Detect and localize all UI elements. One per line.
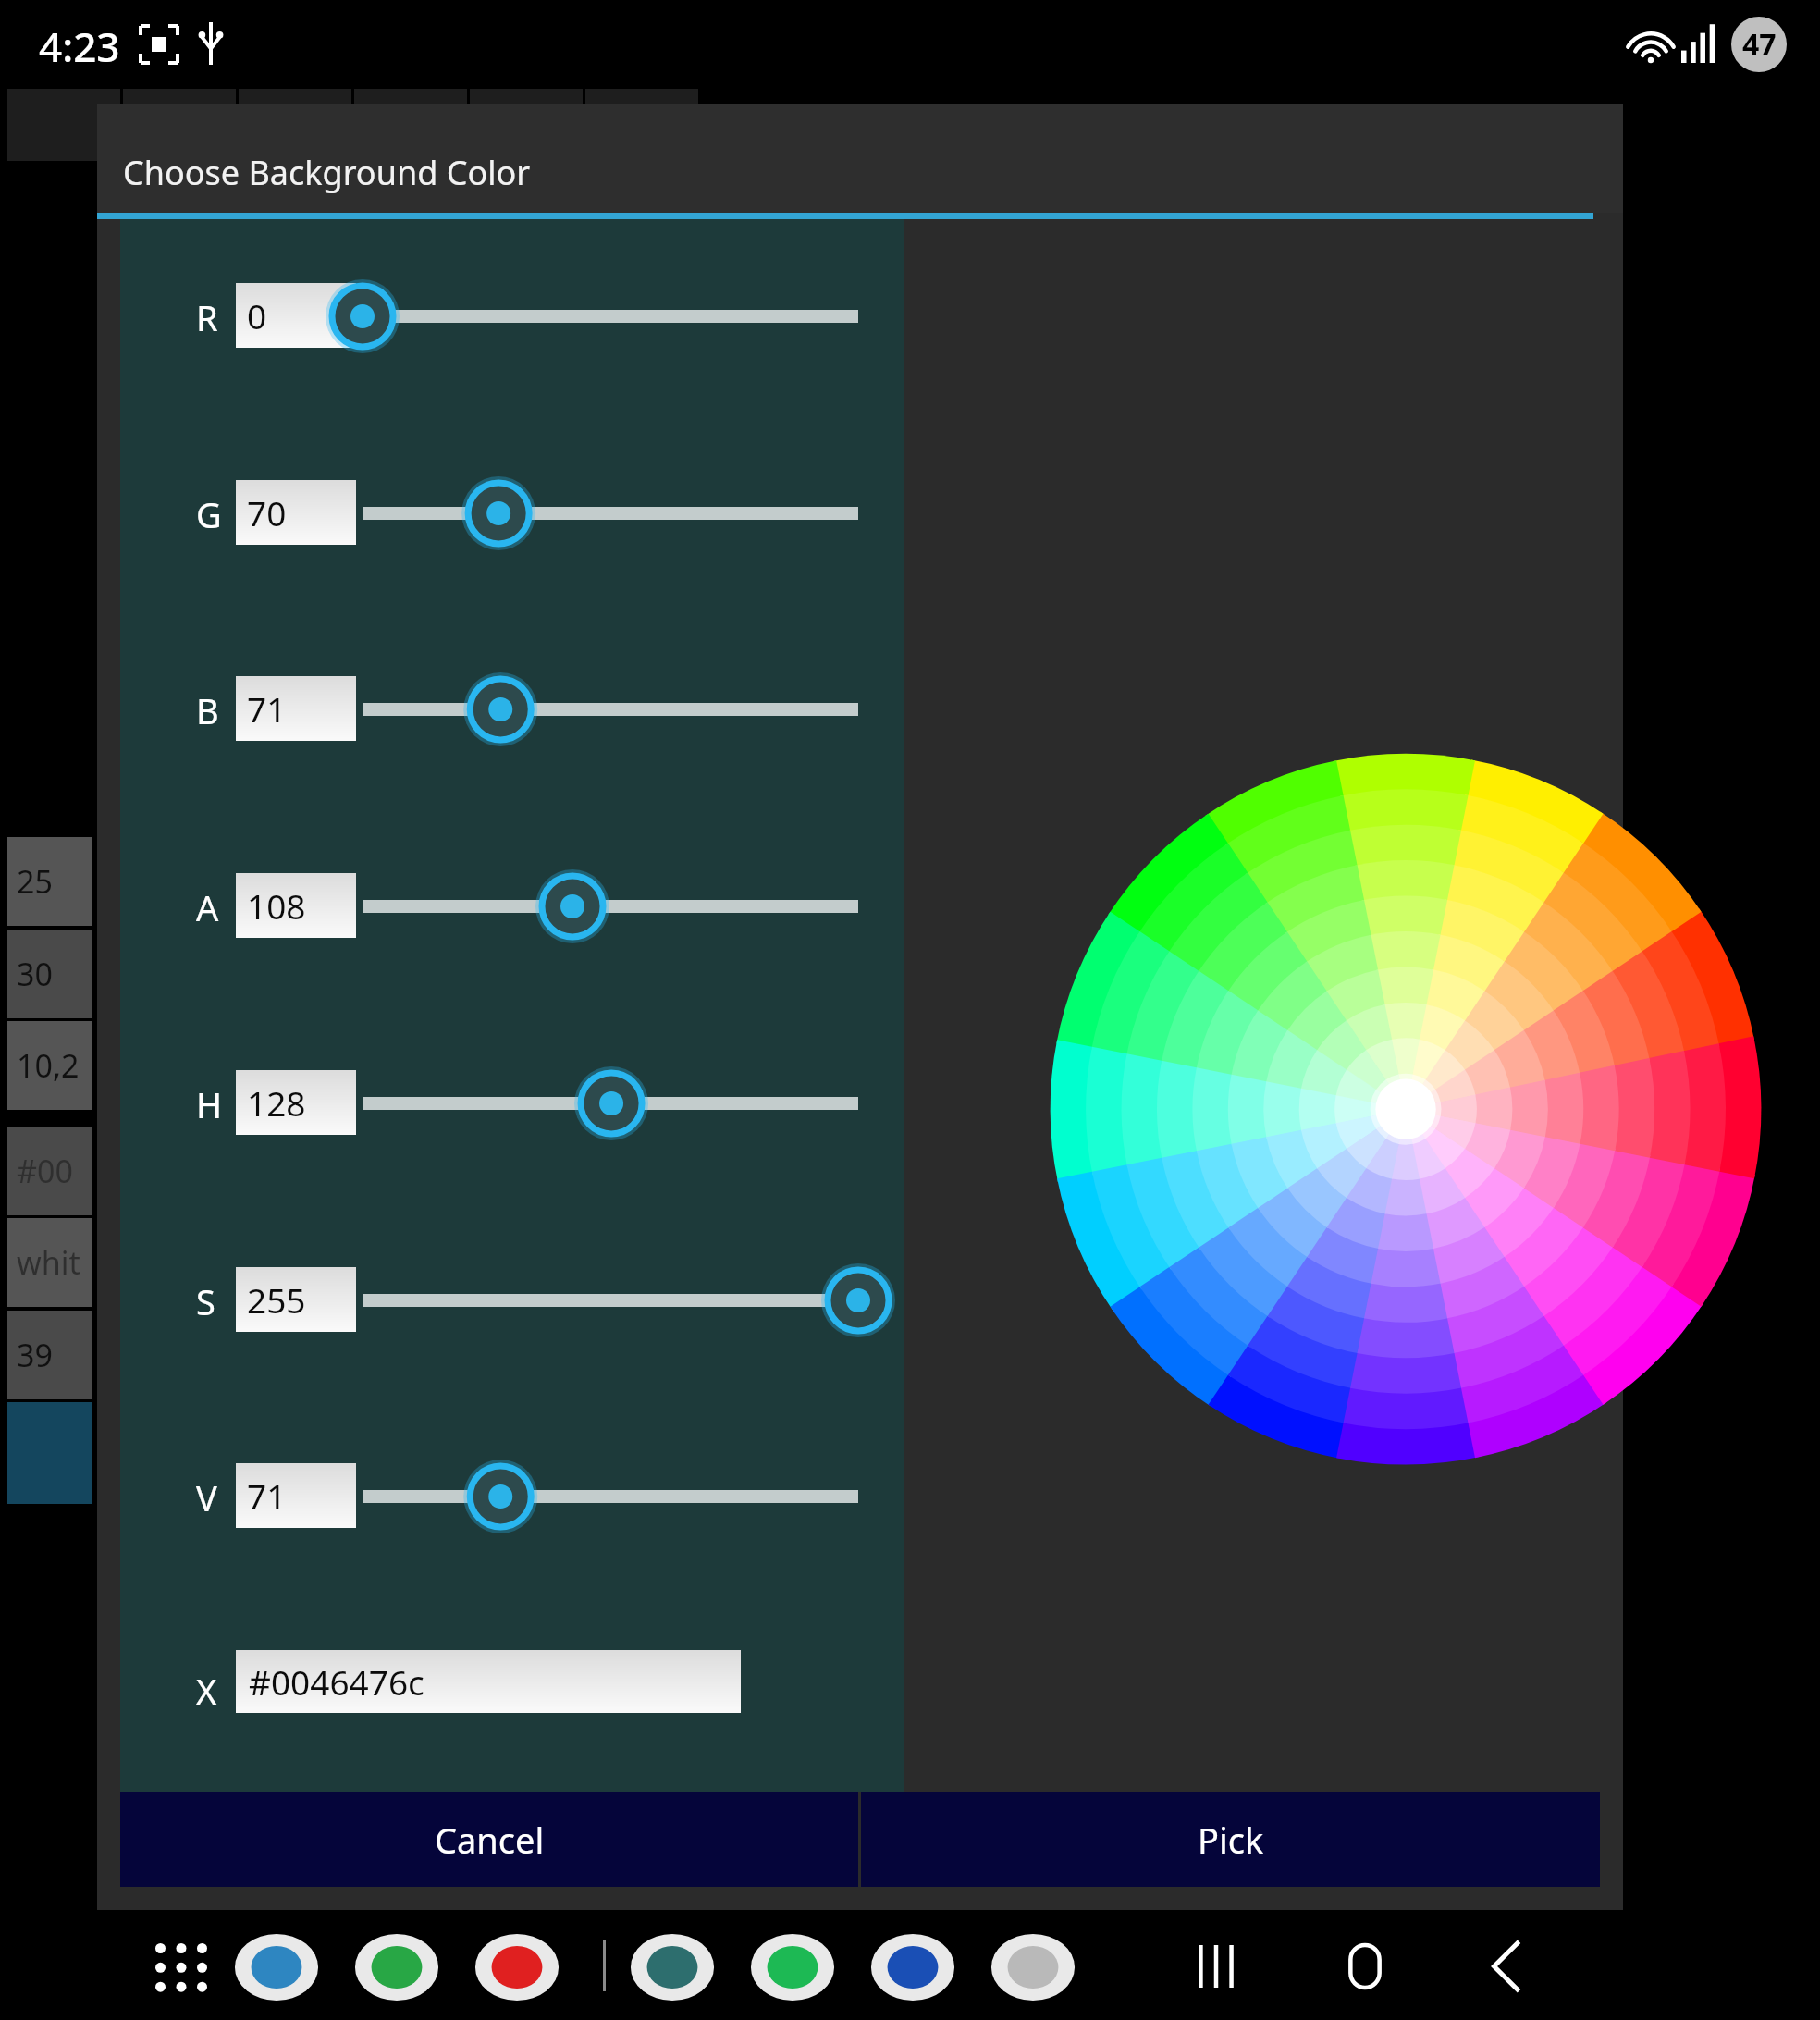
button[interactable]: Pick xyxy=(861,1792,1600,1887)
staticText: Cancel xyxy=(435,1816,545,1864)
button[interactable]: 0 xyxy=(236,283,356,348)
button[interactable]: 108 xyxy=(236,873,356,938)
staticText: 4:23 xyxy=(39,18,120,74)
button[interactable] xyxy=(7,1402,92,1504)
button[interactable]: V slider xyxy=(333,1455,888,1538)
staticText: S xyxy=(196,1277,215,1325)
button[interactable]: All apps xyxy=(155,1943,205,1989)
staticText: Choose Background Color xyxy=(123,150,531,195)
staticText: 108 xyxy=(247,882,306,929)
button[interactable]: Music folder xyxy=(988,1934,1078,2001)
button[interactable]: R slider xyxy=(333,275,888,358)
button[interactable]: S slider xyxy=(333,1259,888,1342)
button[interactable]: #0046476c xyxy=(236,1650,741,1713)
button[interactable] xyxy=(354,89,467,161)
staticText: 47 xyxy=(1742,24,1777,65)
staticText: 10,2 xyxy=(17,1044,80,1087)
button[interactable]: Email xyxy=(867,1934,958,2001)
staticText: 128 xyxy=(247,1079,306,1126)
button[interactable] xyxy=(7,89,120,161)
button[interactable]: Calculator xyxy=(351,1934,442,2001)
button[interactable]: A slider xyxy=(333,865,888,948)
button[interactable]: Back xyxy=(1487,1943,1526,1989)
button[interactable]: 71 xyxy=(236,1463,356,1528)
button[interactable] xyxy=(470,89,583,161)
staticText: whit xyxy=(17,1241,80,1284)
staticText: 39 xyxy=(17,1334,53,1376)
button[interactable]: 30 xyxy=(7,930,92,1018)
button[interactable]: Recents xyxy=(1195,1945,1237,1988)
staticText: R xyxy=(196,293,218,341)
staticText: H xyxy=(196,1080,223,1128)
button[interactable]: 255 xyxy=(236,1267,356,1332)
button[interactable]: 10,2 xyxy=(7,1021,92,1110)
staticText: 0 xyxy=(247,292,267,339)
button[interactable]: B slider xyxy=(333,668,888,751)
button[interactable]: Home xyxy=(1344,1945,1386,1988)
button[interactable]: 71 xyxy=(236,676,356,741)
staticText: V xyxy=(196,1473,217,1521)
button[interactable]: H slider xyxy=(333,1062,888,1145)
button[interactable]: #00 xyxy=(7,1127,92,1215)
staticText: 71 xyxy=(247,685,287,732)
staticText: B xyxy=(196,686,219,734)
staticText: X xyxy=(196,1667,217,1715)
button[interactable] xyxy=(123,89,236,161)
staticText: 255 xyxy=(247,1276,306,1323)
button[interactable]: Phone xyxy=(747,1934,838,2001)
staticText: A xyxy=(196,883,219,931)
button[interactable] xyxy=(239,89,351,161)
staticText: 30 xyxy=(17,953,53,995)
staticText: 25 xyxy=(17,860,53,903)
staticText: Pick xyxy=(1198,1816,1264,1864)
staticText: #00 xyxy=(17,1150,73,1192)
button[interactable]: Color wheel xyxy=(904,219,1623,1792)
button[interactable] xyxy=(585,89,698,161)
staticText: G xyxy=(196,490,222,538)
button[interactable]: Opera browser xyxy=(472,1934,562,2001)
button[interactable]: 128 xyxy=(236,1070,356,1135)
button[interactable]: CX file explorer xyxy=(231,1934,322,2001)
staticText: #0046476c xyxy=(249,1658,424,1705)
button[interactable]: Cancel xyxy=(120,1792,858,1887)
button[interactable]: whit xyxy=(7,1218,92,1307)
button[interactable]: G slider xyxy=(333,472,888,555)
button[interactable]: 39 xyxy=(7,1311,92,1399)
staticText: 71 xyxy=(247,1472,287,1519)
button[interactable]: Sync xyxy=(627,1934,718,2001)
staticText: 70 xyxy=(247,489,287,536)
button[interactable]: 25 xyxy=(7,837,92,926)
button[interactable]: 70 xyxy=(236,480,356,545)
